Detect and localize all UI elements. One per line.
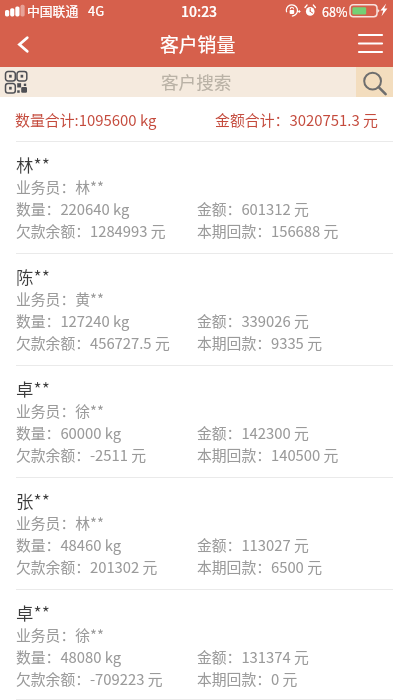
staticText: 68% (322, 2, 348, 20)
staticText: 10:23 (181, 1, 218, 21)
staticText: 金额：131374 元 (197, 646, 309, 667)
staticText: 数量：48460 kg (16, 534, 197, 555)
staticText: 欠款余额：456727.5 元 (16, 332, 197, 353)
button[interactable]: Menu (347, 21, 393, 67)
staticText: 本期回款：6500 元 (197, 556, 322, 577)
staticText: 数量：48080 kg (16, 646, 197, 667)
staticText: 欠款余额：-2511 元 (16, 444, 197, 465)
staticText: 本期回款：9335 元 (197, 332, 322, 353)
button[interactable]: 卓** (0, 590, 393, 700)
staticText: 张** (16, 488, 50, 513)
button[interactable]: 陈** (0, 254, 393, 366)
staticText: 数量：60000 kg (16, 422, 197, 443)
staticText: 中国联通 (27, 1, 79, 20)
staticText: 欠款余额：201302 元 (16, 556, 197, 577)
staticText: 业务员：徐** (16, 400, 104, 421)
staticText: 金额：339026 元 (197, 310, 309, 331)
staticText: 本期回款：156688 元 (197, 220, 339, 241)
staticText: 客户搜索 (161, 69, 232, 94)
staticText: 卓** (16, 600, 50, 625)
staticText: 4G (88, 1, 105, 20)
staticText: 业务员：徐** (16, 624, 104, 645)
staticText: 金额合计：3020751.3 元 (215, 109, 378, 131)
staticText: 金额：113027 元 (197, 534, 309, 555)
staticText: 金额：142300 元 (197, 422, 309, 443)
staticText: 数量：127240 kg (16, 310, 197, 331)
staticText: 数量：220640 kg (16, 198, 197, 219)
staticText: 业务员：林** (16, 512, 104, 533)
button[interactable]: 林** (0, 142, 393, 254)
staticText: 数量合计:1095600 kg (15, 109, 157, 131)
staticText: 林** (16, 152, 50, 177)
staticText: 业务员：黄** (16, 288, 104, 309)
button[interactable]: Search (356, 67, 393, 97)
staticText: 金额：601312 元 (197, 198, 309, 219)
staticText: 本期回款：0 元 (197, 668, 298, 689)
staticText: 陈** (16, 264, 50, 289)
staticText: 本期回款：140500 元 (197, 444, 339, 465)
button[interactable]: 张** (0, 478, 393, 590)
staticText: 业务员：林** (16, 176, 104, 197)
button[interactable]: Back (0, 21, 46, 67)
staticText: 客户销量 (160, 30, 236, 57)
button[interactable]: 卓** (0, 366, 393, 478)
staticText: 欠款余额：1284993 元 (16, 220, 197, 241)
button[interactable]: Scan QR code (0, 67, 33, 97)
staticText: 卓** (16, 376, 50, 401)
staticText: 欠款余额：-709223 元 (16, 668, 197, 689)
